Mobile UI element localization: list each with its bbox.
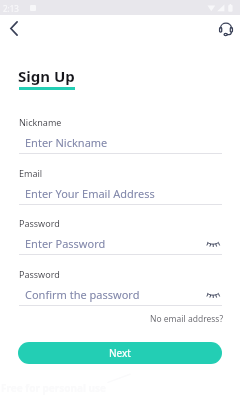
staticText: Password	[19, 268, 60, 280]
staticText: Enter Nickname	[25, 135, 108, 150]
button[interactable]: Toggle password visibility	[205, 286, 221, 302]
staticText: Enter Password	[25, 236, 106, 251]
staticText: Email	[19, 167, 43, 179]
button[interactable]: No email address?	[150, 313, 224, 325]
button[interactable]: Toggle password visibility	[205, 235, 221, 251]
button[interactable]: Back	[3, 17, 25, 39]
staticText: Sign Up	[18, 66, 75, 86]
staticText: Password	[19, 217, 60, 229]
staticText: Confirm the password	[25, 287, 140, 302]
staticText: 2:13	[3, 3, 19, 14]
button[interactable]: Next	[18, 342, 222, 364]
staticText: Enter Your Email Address	[25, 186, 155, 201]
staticText: Next	[109, 346, 131, 360]
button[interactable]: Customer support	[216, 18, 236, 38]
staticText: Nickname	[19, 116, 62, 128]
staticText: No email address?	[150, 313, 224, 325]
